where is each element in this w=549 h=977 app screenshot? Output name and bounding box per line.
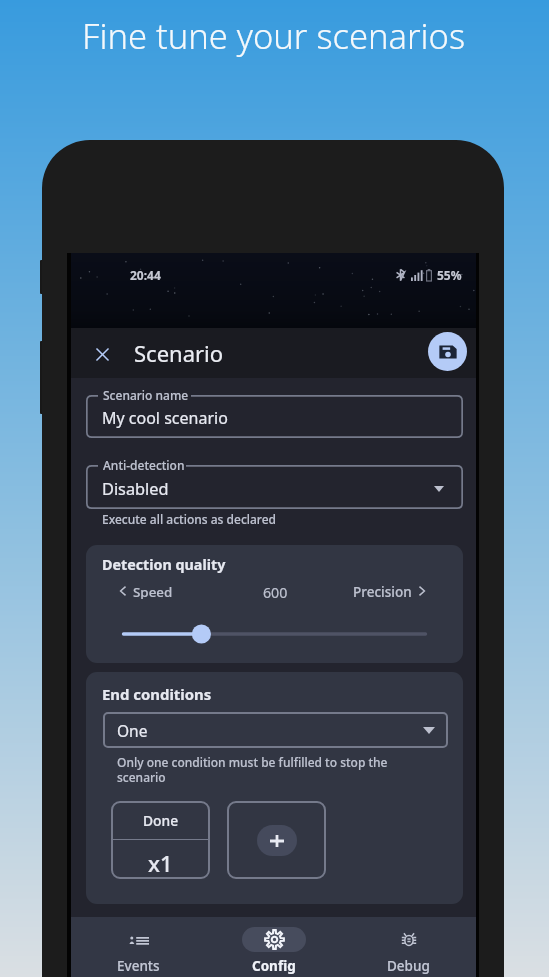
button[interactable]: Detection quality slider bbox=[114, 624, 435, 644]
staticText: Fine tune your scenarios bbox=[82, 12, 466, 59]
staticText: 55% bbox=[437, 267, 462, 283]
button[interactable]: Precision bbox=[353, 583, 425, 599]
staticText: One bbox=[117, 720, 148, 741]
staticText: Scenario name bbox=[103, 387, 189, 403]
staticText: Config bbox=[252, 957, 296, 975]
staticText: End conditions bbox=[102, 684, 212, 704]
staticText: Detection quality bbox=[102, 555, 226, 574]
button[interactable]: Add end condition bbox=[227, 801, 326, 879]
staticText: Done bbox=[143, 811, 179, 830]
staticText: Disabled bbox=[102, 478, 169, 500]
staticText: Debug bbox=[387, 957, 430, 975]
button[interactable]: Config bbox=[206, 917, 341, 977]
staticText: Events bbox=[117, 957, 160, 975]
button[interactable]: Save scenario bbox=[428, 332, 467, 371]
staticText: Only one condition must be fulfilled to … bbox=[117, 754, 388, 785]
button[interactable]: Done bbox=[111, 801, 210, 879]
staticText: Anti-detection bbox=[103, 457, 185, 473]
staticText: x1 bbox=[148, 848, 173, 878]
staticText: 600 bbox=[263, 583, 288, 599]
button[interactable]: One bbox=[103, 712, 448, 748]
button[interactable]: Anti-detection bbox=[86, 465, 463, 509]
button[interactable]: Events bbox=[71, 917, 206, 977]
staticText: My cool scenario bbox=[102, 407, 228, 429]
button[interactable]: Debug bbox=[341, 917, 476, 977]
staticText: Execute all actions as declared bbox=[102, 511, 277, 527]
button[interactable]: Close bbox=[86, 338, 118, 370]
button[interactable]: Scenario name bbox=[86, 395, 463, 438]
staticText: Scenario bbox=[134, 338, 224, 368]
staticText: 20:44 bbox=[130, 267, 161, 283]
button[interactable]: Speed bbox=[120, 583, 173, 599]
staticText: Precision bbox=[353, 583, 412, 599]
staticText: Speed bbox=[133, 583, 173, 599]
